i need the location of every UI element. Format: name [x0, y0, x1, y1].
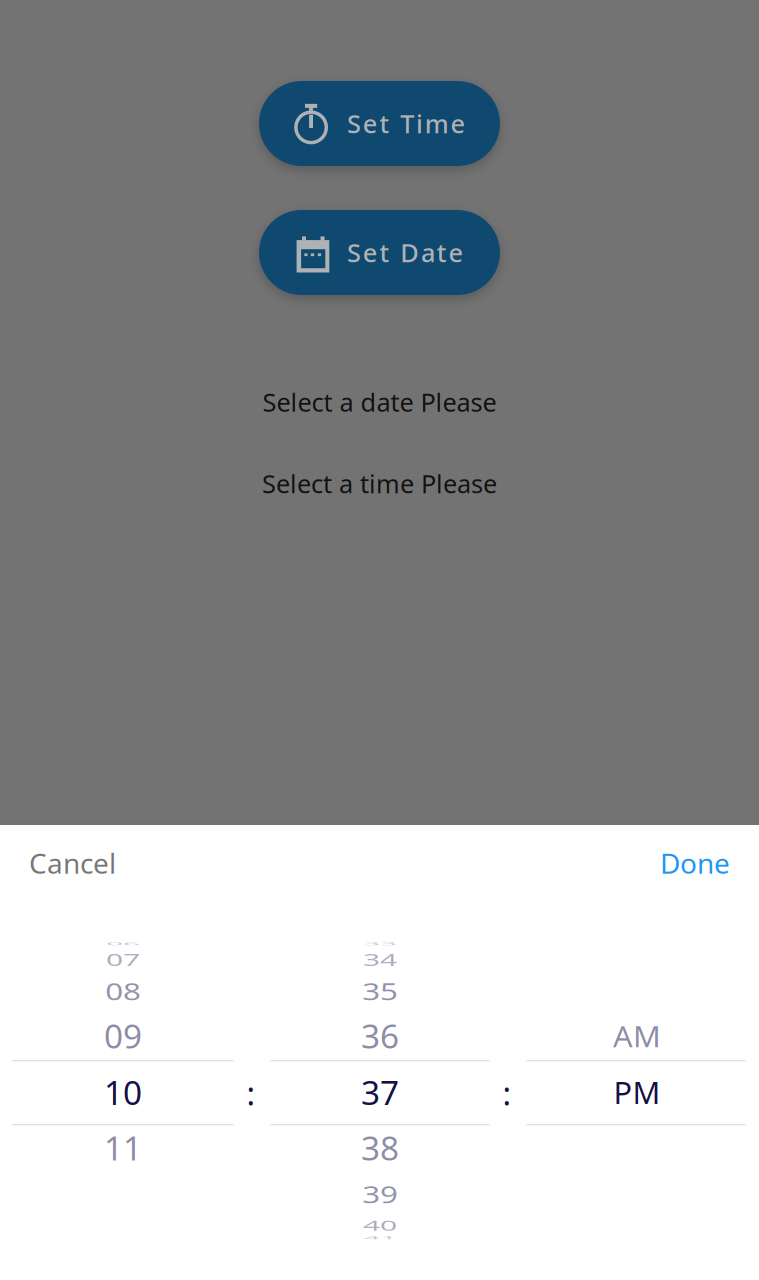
staticText: 06 [104, 922, 142, 966]
button[interactable]: Set Date [259, 210, 500, 295]
button[interactable]: Cancel [29, 836, 116, 890]
button[interactable]: Hour [12, 940, 234, 1240]
staticText: 09 [104, 1014, 142, 1058]
staticText: 38 [361, 1126, 399, 1170]
staticText: : [246, 1072, 255, 1114]
staticText: Done [660, 844, 730, 882]
staticText: PM [613, 1072, 660, 1112]
staticText: Select a time Please [262, 467, 497, 500]
button[interactable]: Set Time [259, 81, 500, 166]
staticText: 39 [361, 1172, 399, 1216]
staticText: Set Date [347, 236, 464, 269]
staticText: : [502, 1072, 511, 1114]
staticText: Cancel [29, 844, 116, 882]
staticText: AM [613, 1016, 661, 1056]
staticText: 07 [104, 938, 142, 982]
button[interactable]: Minute [270, 940, 490, 1240]
staticText: 40 [361, 1203, 399, 1247]
staticText: 34 [361, 938, 399, 982]
button[interactable]: Done [660, 836, 730, 890]
staticText: 35 [361, 969, 399, 1013]
staticText: 33 [361, 922, 399, 966]
staticText: Set Time [347, 107, 466, 140]
staticText: 37 [361, 1070, 399, 1114]
staticText: 11 [104, 1126, 142, 1170]
staticText: Select a date Please [262, 385, 496, 419]
staticText: 36 [361, 1014, 399, 1058]
button[interactable]: AM or PM [526, 940, 746, 1240]
staticText: 10 [104, 1070, 142, 1114]
staticText: 08 [104, 969, 142, 1013]
staticText: 41 [361, 1216, 399, 1260]
